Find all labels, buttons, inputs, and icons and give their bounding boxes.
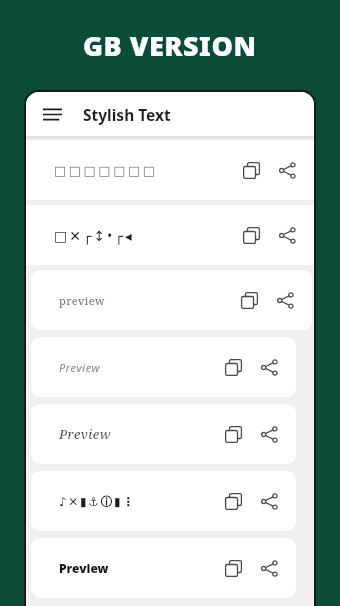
button[interactable]: Copy text xyxy=(216,484,250,518)
button[interactable]: □✕┌↕•┌◂ xyxy=(26,205,314,265)
button[interactable]: ♪✕▮⚓ⓘ▮⋮ xyxy=(31,471,296,531)
button[interactable]: Share text xyxy=(252,551,286,585)
button[interactable]: Preview xyxy=(31,404,296,464)
staticText: Stylish Text xyxy=(83,104,171,125)
button[interactable]: Share text xyxy=(270,153,304,187)
button[interactable]: Preview xyxy=(31,337,296,397)
staticText: Preview xyxy=(59,425,216,443)
button[interactable]: Share text xyxy=(252,484,286,518)
button[interactable]: Share text xyxy=(270,218,304,252)
staticText: Preview xyxy=(59,360,216,375)
button[interactable]: Copy text xyxy=(216,417,250,451)
button[interactable]: Copy text xyxy=(234,153,268,187)
button[interactable]: Copy text xyxy=(234,218,268,252)
button[interactable]: Copy text xyxy=(232,283,266,317)
staticText: Preview xyxy=(59,560,216,576)
button[interactable]: Copy text xyxy=(216,551,250,585)
button[interactable]: Share text xyxy=(252,350,286,384)
staticText: preview xyxy=(59,293,232,308)
button[interactable]: Share text xyxy=(252,417,286,451)
button[interactable]: □□□□□□□ xyxy=(26,140,314,200)
staticText: □□□□□□□ xyxy=(54,163,234,178)
button[interactable]: Share text xyxy=(268,283,302,317)
staticText: ♪✕▮⚓ⓘ▮⋮ xyxy=(59,494,216,509)
button[interactable]: Open navigation menu xyxy=(35,97,69,131)
staticText: □✕┌↕•┌◂ xyxy=(54,226,234,245)
button[interactable]: Copy text xyxy=(216,350,250,384)
button[interactable]: Preview xyxy=(31,538,296,598)
button[interactable]: preview xyxy=(31,270,312,330)
staticText: GB VERSION xyxy=(83,27,257,64)
